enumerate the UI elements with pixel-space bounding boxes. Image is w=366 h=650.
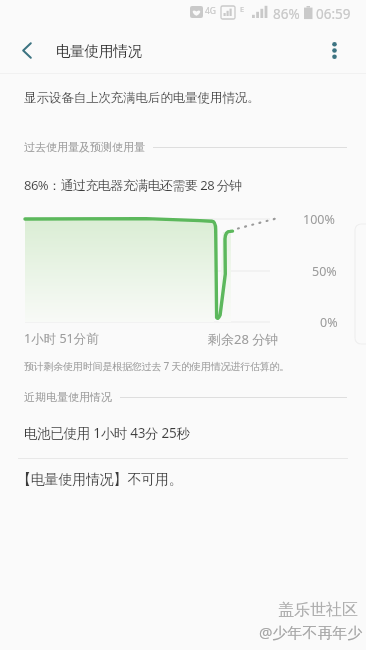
staticText: 1小时 51分前 (24, 330, 99, 347)
staticText: 显示设备自上次充满电后的电量使用情况。 (24, 90, 260, 106)
staticText: @少年不再年少 (259, 622, 363, 642)
staticText: 剩余28 分钟 (208, 330, 279, 348)
staticText: 电池已使用 1小时 43分 25秒 (24, 424, 190, 442)
staticText: 4G (205, 5, 217, 17)
staticText: 100% (303, 211, 335, 228)
button[interactable]: Back (3, 28, 51, 74)
staticText: 50% (312, 263, 337, 280)
button[interactable]: More options (311, 28, 357, 74)
staticText: 过去使用量及预测使用量 (24, 140, 145, 154)
staticText: 电量使用情况 (56, 42, 142, 60)
staticText: 06:59 (316, 5, 351, 23)
staticText: 近期电量使用情况 (24, 390, 112, 404)
staticText: 【电量使用情况】不可用。 (17, 471, 183, 489)
staticText: 预计剩余使用时间是根据您过去 7 天的使用情况进行估算的。 (24, 359, 290, 373)
staticText: E (240, 4, 245, 14)
staticText: 86%：通过充电器充满电还需要 28 分钟 (24, 176, 242, 194)
staticText: 0% (320, 314, 338, 331)
staticText: 86% (273, 5, 300, 23)
staticText: 盖乐世社区 (278, 600, 358, 620)
